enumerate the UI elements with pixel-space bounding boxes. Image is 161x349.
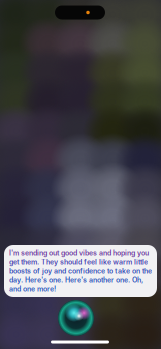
staticText: boosts of joy and confidence to take on … [9, 267, 152, 275]
staticText: day. Here's one. Here's another one. Oh, [9, 276, 143, 284]
staticText: get them. They should feel like warm lit… [9, 258, 148, 266]
staticText: and one more! [9, 285, 56, 293]
staticText: I'm sending out good vibes and hoping yo… [9, 249, 149, 257]
